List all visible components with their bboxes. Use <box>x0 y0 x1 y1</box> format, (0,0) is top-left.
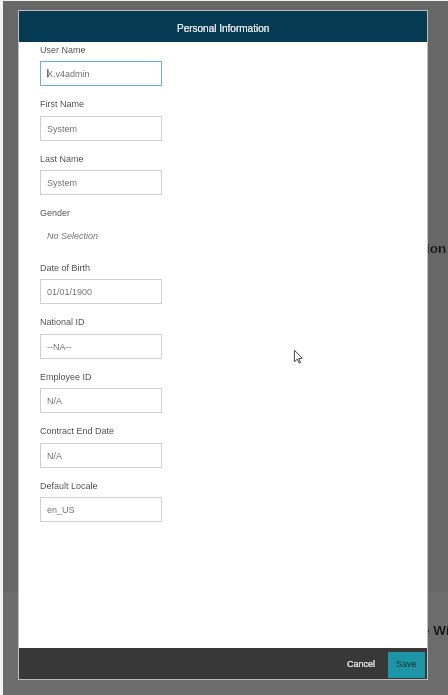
staticText: System <box>47 178 78 188</box>
staticText: ion <box>426 241 447 256</box>
button[interactable]: Save <box>388 652 425 678</box>
staticText: Personal Information <box>177 23 270 34</box>
button[interactable]: en_US <box>40 497 162 522</box>
staticText: 01/01/1900 <box>47 287 93 297</box>
staticText: Last Name <box>40 154 84 164</box>
button[interactable]: --NA-- <box>40 334 162 359</box>
button[interactable]: System <box>40 116 162 141</box>
staticText: e Wi <box>422 623 448 638</box>
staticText: Contract End Date <box>40 426 115 436</box>
staticText: Employee ID <box>40 372 92 382</box>
staticText: N/A <box>47 396 63 406</box>
staticText: N/A <box>47 451 63 461</box>
staticText: --NA-- <box>47 342 72 352</box>
button[interactable]: Cancel <box>341 653 381 675</box>
staticText: First Name <box>40 99 85 109</box>
staticText: Save <box>396 659 417 669</box>
staticText: Date of Birth <box>40 263 91 273</box>
staticText: Cancel <box>347 659 376 669</box>
button[interactable]: N/A <box>40 443 162 468</box>
staticText: en_US <box>47 505 75 515</box>
staticText: X.v4admin <box>47 69 90 79</box>
button[interactable]: X.v4admin <box>40 61 162 86</box>
button[interactable]: 01/01/1900 <box>40 279 162 304</box>
staticText: User Name <box>40 45 86 55</box>
button[interactable]: N/A <box>40 388 162 413</box>
staticText: Default Locale <box>40 481 98 491</box>
button[interactable]: System <box>40 170 162 195</box>
staticText: System <box>47 124 78 134</box>
staticText: Gender <box>40 208 71 218</box>
staticText: National ID <box>40 317 85 327</box>
staticText: No Selection <box>47 231 99 241</box>
